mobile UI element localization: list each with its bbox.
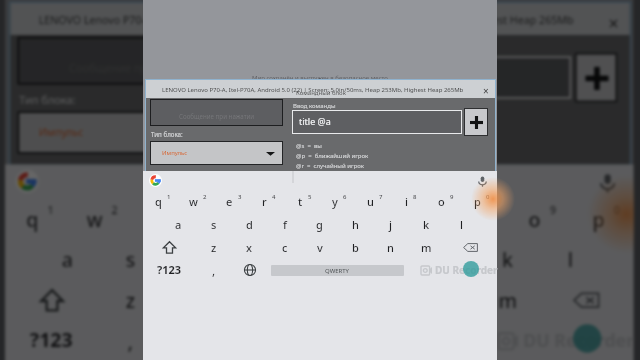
button[interactable]: v	[302, 236, 337, 259]
button[interactable]: s	[196, 213, 231, 236]
button[interactable]: c	[267, 236, 302, 259]
button[interactable]: l	[444, 213, 479, 236]
button[interactable]: w	[178, 190, 213, 213]
button[interactable]: m	[409, 236, 444, 259]
staticText: u	[403, 205, 415, 232]
button[interactable]: i	[391, 190, 426, 213]
button[interactable]: u	[355, 190, 390, 213]
button[interactable]: p	[571, 198, 633, 239]
button[interactable]: h	[351, 239, 413, 280]
button[interactable]: Google search	[149, 174, 162, 187]
button[interactable]: Сообщение при нажатии	[151, 100, 282, 125]
button[interactable]: i	[445, 198, 507, 239]
button[interactable]: y	[320, 190, 355, 213]
button[interactable]: Google search	[16, 170, 39, 193]
button[interactable]: w	[67, 198, 129, 239]
button[interactable]: s	[99, 239, 161, 280]
button[interactable]: Voice input	[598, 173, 617, 193]
button[interactable]: l	[539, 239, 601, 280]
staticText: b	[352, 240, 359, 255]
button[interactable]: j	[373, 213, 408, 236]
staticText: 8	[484, 204, 491, 218]
button[interactable]: Voice input	[477, 176, 488, 187]
staticText: @s = вы	[277, 113, 323, 127]
button[interactable]: e	[131, 198, 193, 239]
button[interactable]: m	[477, 280, 539, 321]
staticText: 4	[272, 193, 276, 201]
button[interactable]: Switch language	[232, 258, 268, 281]
button[interactable]: o	[507, 198, 569, 239]
button[interactable]: t	[257, 198, 319, 239]
staticText: ?123	[30, 326, 74, 353]
button[interactable]: f	[225, 239, 287, 280]
staticText: w	[87, 205, 103, 232]
button[interactable]: title @a	[293, 111, 461, 133]
staticText: QWERTY	[325, 267, 350, 275]
button[interactable]: d	[232, 213, 267, 236]
button[interactable]: d	[163, 239, 225, 280]
button[interactable]: k	[409, 213, 444, 236]
button[interactable]: r	[193, 198, 255, 239]
staticText: a	[175, 217, 182, 232]
button[interactable]: n	[373, 236, 408, 259]
staticText: ,	[212, 262, 216, 278]
button[interactable]: g	[302, 213, 337, 236]
staticText: f	[253, 246, 261, 273]
staticText: 5	[308, 193, 312, 201]
button[interactable]: Backspace	[444, 236, 497, 259]
staticText: 1	[167, 193, 171, 201]
button[interactable]: j	[413, 239, 475, 280]
button[interactable]: Shift	[5, 280, 99, 321]
button[interactable]: ×	[608, 10, 619, 35]
button[interactable]: f	[267, 213, 302, 236]
button[interactable]: Импульс	[151, 142, 282, 164]
button[interactable]: ×	[483, 84, 489, 98]
button[interactable]: x	[231, 236, 266, 259]
button[interactable]: e	[214, 190, 249, 213]
button[interactable]: y	[319, 198, 381, 239]
button[interactable]: z	[196, 236, 231, 259]
button[interactable]: a	[37, 239, 99, 280]
button[interactable]: ?123	[5, 319, 99, 360]
button[interactable]: Backspace	[539, 280, 633, 321]
button[interactable]: q	[5, 198, 67, 239]
staticText: 9	[450, 193, 454, 201]
button[interactable]: z	[99, 280, 161, 321]
button[interactable]: ,	[99, 319, 163, 360]
button[interactable]: a	[161, 213, 196, 236]
button[interactable]: t	[285, 190, 320, 213]
button[interactable]: g	[287, 239, 349, 280]
button[interactable]: r	[249, 190, 284, 213]
button[interactable]: o	[426, 190, 461, 213]
staticText: p	[474, 194, 481, 209]
button[interactable]: ,	[196, 258, 232, 281]
button[interactable]: title @a	[271, 58, 569, 97]
button[interactable]: Shift	[143, 236, 196, 259]
button[interactable]: QWERTY	[271, 265, 404, 276]
staticText: j	[389, 217, 392, 232]
staticText: v	[317, 240, 323, 255]
button[interactable]: Add command	[576, 54, 615, 101]
button[interactable]: ?123	[143, 258, 196, 281]
button[interactable]: u	[381, 198, 443, 239]
button[interactable]: p	[462, 190, 497, 213]
button[interactable]: q	[143, 190, 178, 213]
button[interactable]: h	[338, 213, 373, 236]
button[interactable]: k	[477, 239, 539, 280]
staticText: l	[460, 217, 463, 232]
button[interactable]: Импульс	[19, 113, 252, 152]
staticText: d	[246, 217, 253, 232]
button[interactable]: Сообщение при нажатии	[19, 38, 252, 83]
button[interactable]: Add command	[465, 109, 487, 135]
button[interactable]: b	[338, 236, 373, 259]
staticText: Сообщение при нажатии	[179, 112, 255, 120]
